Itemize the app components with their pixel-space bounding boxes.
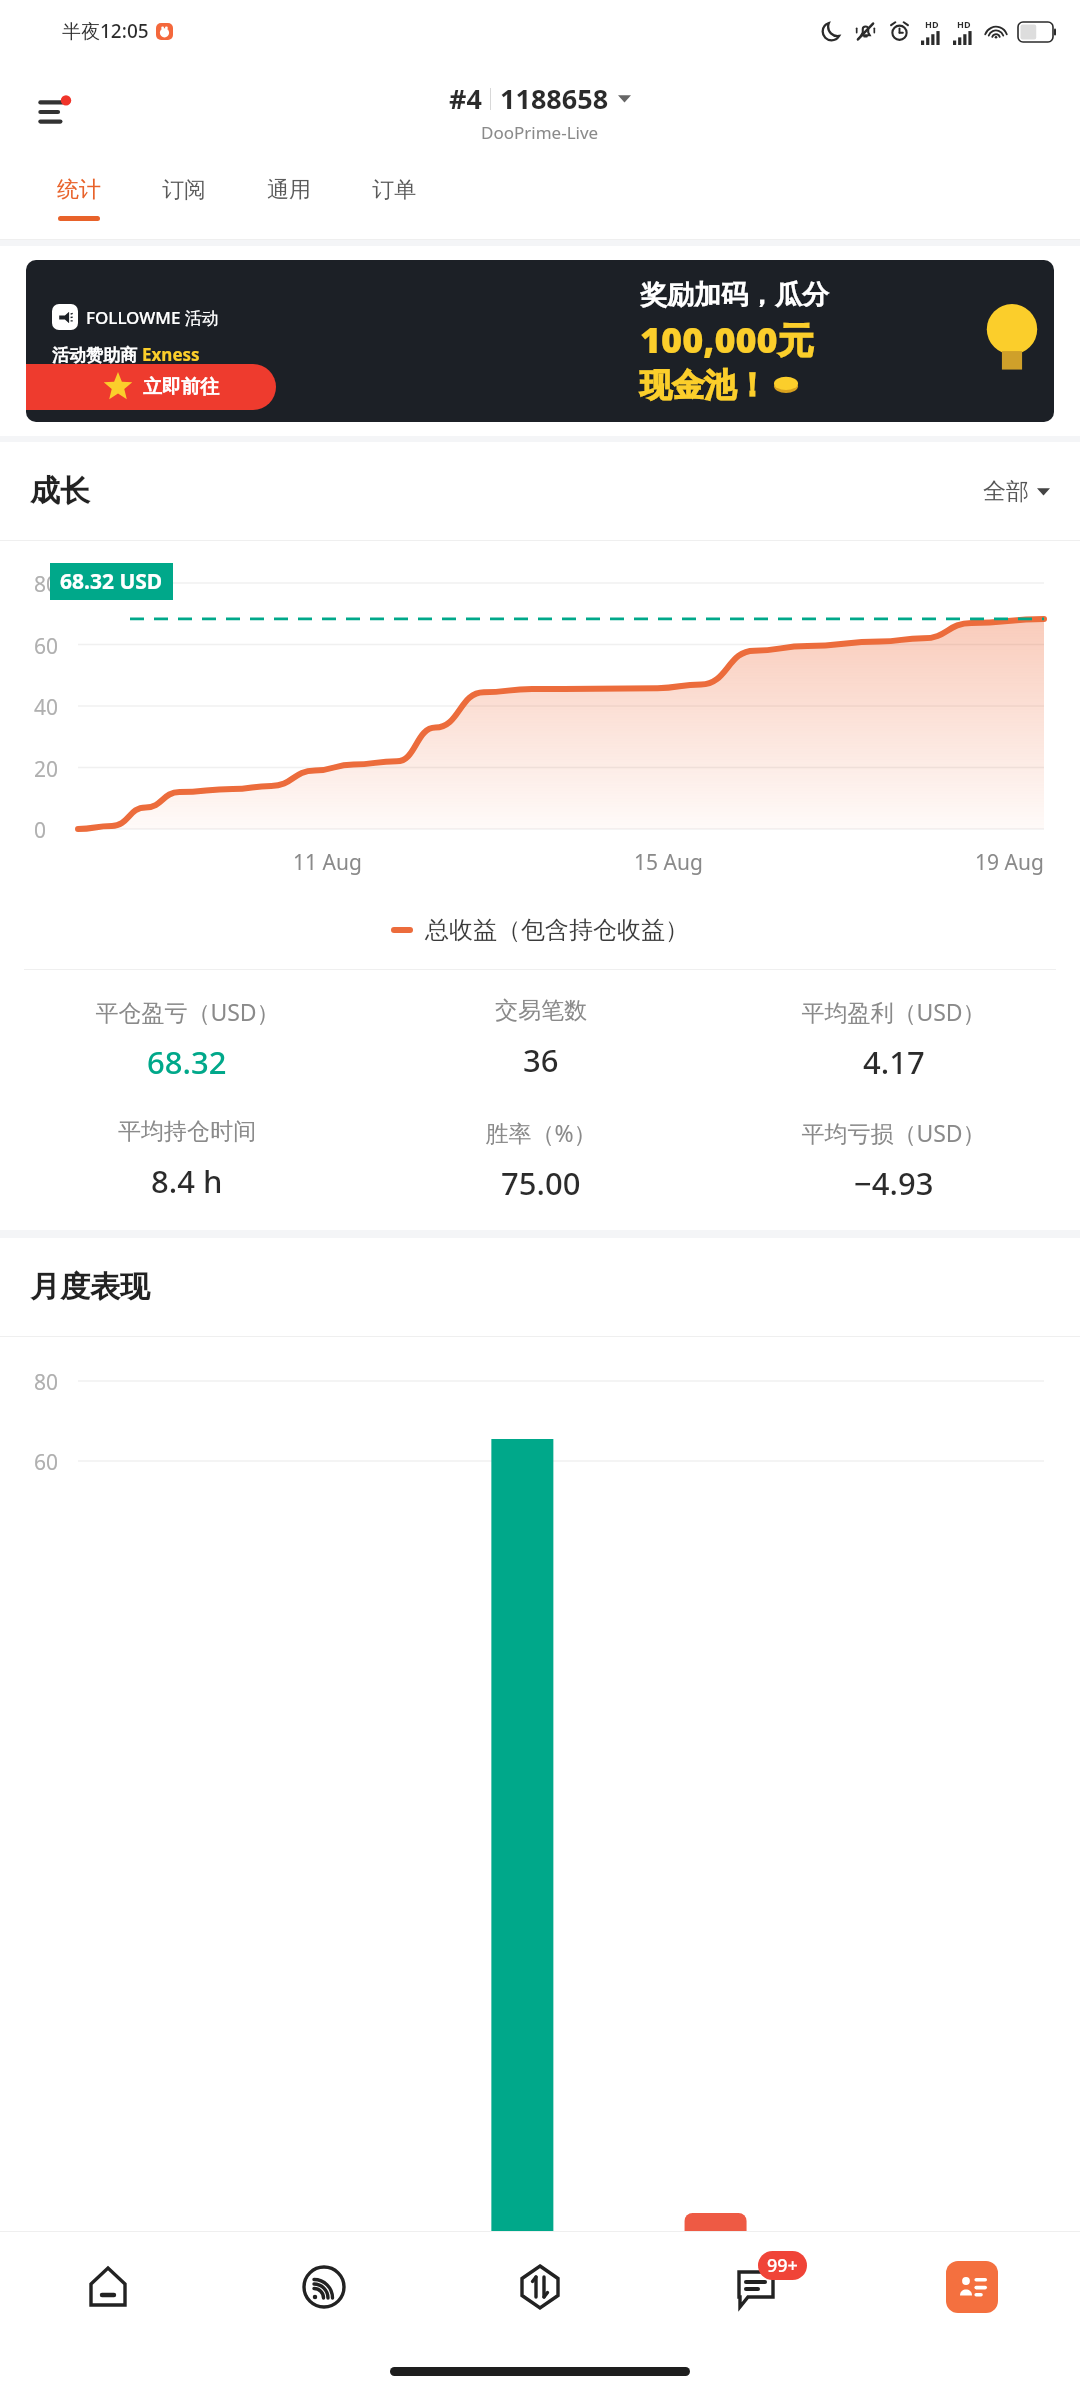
- staticText: 奖励加码，瓜分: [640, 278, 829, 312]
- staticText: 99+: [767, 2253, 798, 2278]
- staticText: 68.32 USD: [60, 567, 163, 596]
- staticText: 统计: [57, 176, 101, 204]
- staticText: 通用: [267, 176, 311, 204]
- button[interactable]: 胜率（%）: [364, 1117, 717, 1204]
- staticText: 80: [34, 570, 59, 599]
- staticText: 40: [34, 693, 59, 722]
- button[interactable]: 通用: [236, 162, 341, 240]
- staticText: 月度表现: [30, 1268, 150, 1306]
- button[interactable]: 订阅: [131, 162, 236, 240]
- staticText: 胜率（%）: [485, 1117, 597, 1148]
- button[interactable]: 全部: [983, 477, 1050, 506]
- staticText: 成长: [30, 472, 90, 510]
- staticText: 60: [34, 1448, 59, 1477]
- button[interactable]: FOLLOWME 活动: [26, 260, 1054, 422]
- staticText: 68.32: [147, 1041, 227, 1083]
- staticText: 4.17: [863, 1041, 925, 1083]
- staticText: 活动赞助商: [52, 343, 142, 366]
- staticText: 平均持仓时间: [118, 1117, 256, 1146]
- staticText: 交易笔数: [495, 996, 587, 1025]
- staticText: 80: [34, 1368, 59, 1397]
- staticText: Exness: [142, 343, 200, 366]
- button[interactable]: 平均盈利（USD）: [717, 996, 1070, 1083]
- staticText: 8.4 h: [151, 1160, 223, 1202]
- staticText: 20: [34, 755, 59, 784]
- staticText: 半夜12:05: [62, 18, 149, 44]
- staticText: 平均亏损（USD）: [801, 1117, 986, 1148]
- staticText: −4.93: [854, 1162, 934, 1204]
- staticText: 平均盈利（USD）: [801, 996, 986, 1027]
- button[interactable]: Menu: [30, 84, 86, 140]
- staticText: 订单: [372, 176, 416, 204]
- staticText: DooPrime-Live: [481, 121, 599, 144]
- staticText: 100,000元: [640, 315, 814, 364]
- staticText: 1188658: [500, 80, 609, 117]
- button[interactable]: 立即前往: [26, 364, 276, 410]
- button[interactable]: 平均持仓时间: [10, 1117, 364, 1202]
- staticText: 立即前往: [143, 375, 219, 399]
- button[interactable]: Trade: [432, 2232, 648, 2342]
- button[interactable]: 统计: [26, 162, 131, 240]
- button[interactable]: 平仓盈亏（USD）: [10, 996, 364, 1083]
- staticText: 总收益（包含持仓收益）: [425, 915, 689, 945]
- button[interactable]: Feed: [216, 2232, 432, 2342]
- staticText: 0: [34, 816, 47, 845]
- staticText: 15 Aug: [634, 848, 703, 877]
- staticText: FOLLOWME 活动: [86, 306, 219, 329]
- button[interactable]: 平均亏损（USD）: [717, 1117, 1070, 1204]
- staticText: 全部: [983, 477, 1029, 506]
- staticText: 19 Aug: [975, 848, 1044, 877]
- staticText: 平仓盈亏（USD）: [95, 996, 280, 1027]
- staticText: 36: [523, 1039, 559, 1081]
- staticText: HD: [957, 18, 971, 30]
- button[interactable]: Messages: [648, 2232, 864, 2342]
- button[interactable]: #4: [449, 80, 631, 117]
- button[interactable]: Profile: [864, 2232, 1080, 2342]
- staticText: 11 Aug: [293, 848, 362, 877]
- staticText: 75.00: [501, 1162, 581, 1204]
- button[interactable]: 订单: [341, 162, 446, 240]
- staticText: HD: [925, 18, 939, 30]
- button[interactable]: 交易笔数: [364, 996, 717, 1081]
- staticText: #4: [449, 80, 482, 117]
- button[interactable]: Home: [0, 2232, 216, 2342]
- staticText: 60: [34, 632, 59, 661]
- staticText: 订阅: [162, 176, 206, 204]
- staticText: 现金池！: [640, 365, 768, 405]
